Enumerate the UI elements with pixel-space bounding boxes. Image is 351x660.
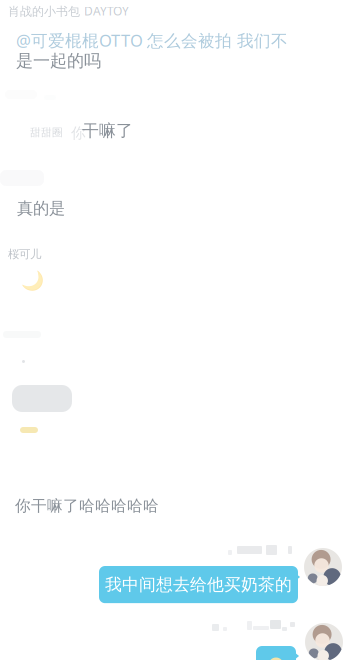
staticText: 我中间想去给他买奶茶的 [105,574,292,595]
staticText: 干嘛了 [82,120,133,141]
staticText: 🌙 [21,270,44,291]
button[interactable]: 我中间想去给他买奶茶的 [99,566,298,603]
button[interactable]: Profile photo [305,623,343,660]
button[interactable]: Sticker message [256,646,296,660]
button[interactable]: Profile photo [304,548,342,586]
staticText: 你干嘛了哈哈哈哈哈 [15,496,159,516]
staticText: @可爱棍棍OTTO 怎么会被拍 我们不 [16,29,288,51]
staticText: 你 [71,124,86,142]
staticText: 桜可儿 [8,247,41,261]
staticText: 甜甜圈 [30,126,63,139]
staticText: 是一起的吗 [16,50,101,71]
staticText: 肖战的小书包 DAYTOY [8,3,129,19]
staticText: 真的是 [17,198,65,218]
